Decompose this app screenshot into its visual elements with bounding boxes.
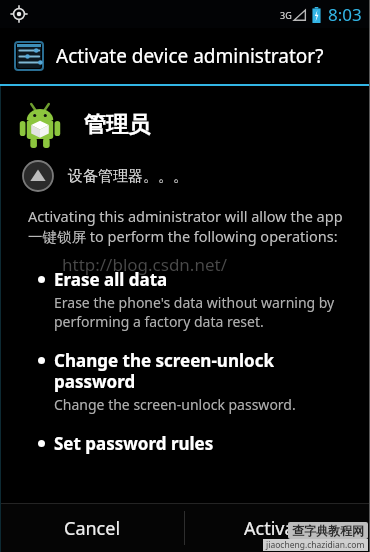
staticText: Change the screen-unlock password — [54, 349, 352, 393]
staticText: Erase the phone's data without warning b… — [54, 293, 352, 331]
staticText: Set password rules — [54, 432, 214, 455]
button[interactable]: Cancel — [0, 504, 184, 552]
staticText: Cancel — [64, 516, 121, 541]
staticText: 8:03 — [328, 3, 362, 26]
button[interactable]: Collapse details — [22, 160, 54, 192]
staticText: Activating this administrator will allow… — [28, 206, 352, 246]
button[interactable]: Activate — [185, 504, 370, 552]
staticText: http://blog.csdn.net/ — [62, 253, 227, 276]
staticText: Change the screen-unlock password. — [54, 395, 296, 414]
staticText: 3G — [280, 9, 292, 21]
staticText: 设备管理器。。。 — [68, 167, 188, 186]
staticText: Erase all data — [54, 268, 168, 291]
staticText: Activate — [244, 516, 312, 541]
staticText: Activate device administrator? — [56, 43, 324, 69]
staticText: 管理员 — [84, 111, 150, 139]
staticText: 查字典教程网 — [292, 523, 364, 538]
staticText: jiaocheng.chazidian.com — [266, 539, 365, 551]
